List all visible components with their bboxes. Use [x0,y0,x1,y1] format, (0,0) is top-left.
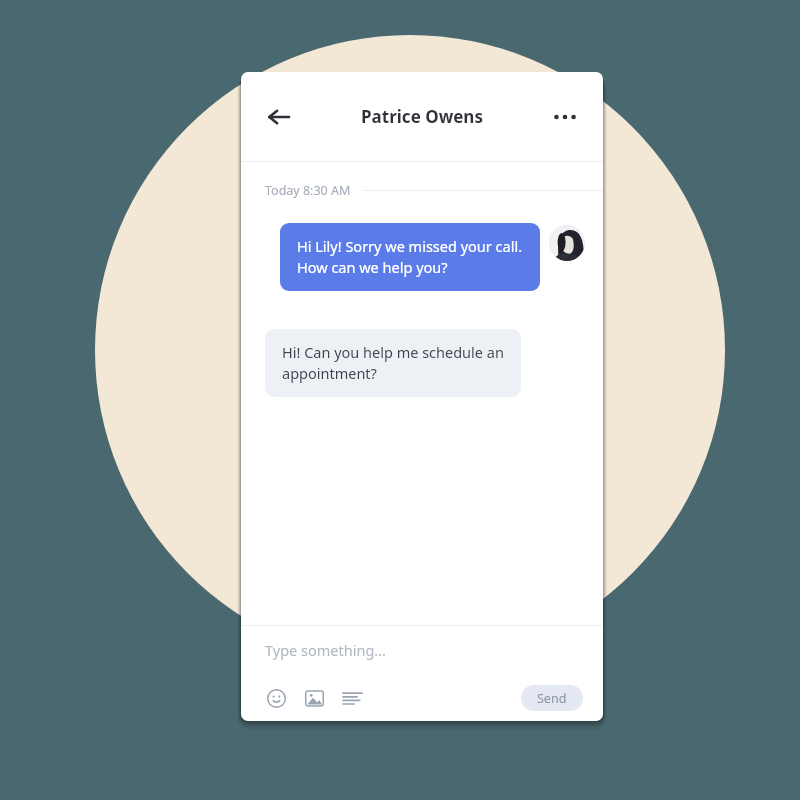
staticText: Send [537,690,567,707]
staticText: Hi Lily! Sorry we missed your call. How … [297,236,523,278]
button[interactable]: Type something... [241,626,603,674]
button[interactable]: Send [521,685,583,711]
staticText: Hi! Can you help me schedule an appointm… [282,342,504,384]
button[interactable]: More options [543,95,587,139]
button[interactable]: Insert emoji [261,683,291,713]
staticText: Today 8:30 AM [265,182,351,199]
button[interactable]: Formatting [337,683,367,713]
button[interactable]: Hi! Can you help me schedule an appointm… [265,329,521,397]
staticText: Patrice Owens [361,105,483,128]
staticText: Type something... [265,640,386,660]
button[interactable]: Attach image [299,683,329,713]
button[interactable]: Patrice Owens avatar [549,225,585,261]
button[interactable]: Hi Lily! Sorry we missed your call. How … [280,223,540,291]
button[interactable]: Back [257,95,301,139]
